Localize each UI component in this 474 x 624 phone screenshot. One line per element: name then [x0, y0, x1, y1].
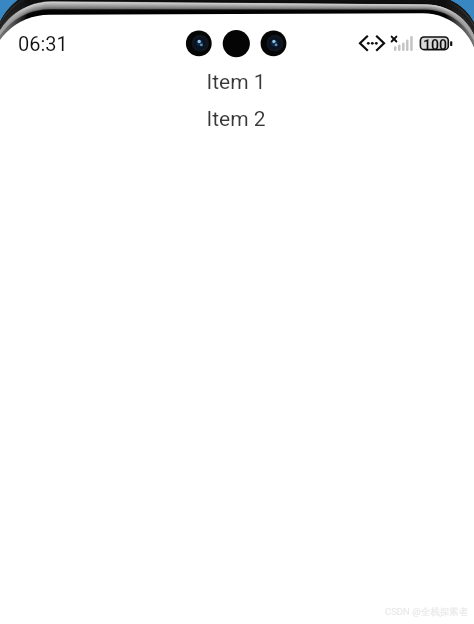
button[interactable]: Item 1: [0, 64, 473, 101]
staticText: 100: [423, 37, 448, 53]
button[interactable]: Item 2: [0, 101, 473, 138]
staticText: Item 1: [206, 70, 266, 95]
staticText: 06:31: [18, 32, 68, 55]
other: Status bar indicators: [0, 0, 474, 70]
staticText: Item 2: [206, 107, 266, 132]
staticText: CSDN @全栈探索者: [385, 606, 469, 618]
